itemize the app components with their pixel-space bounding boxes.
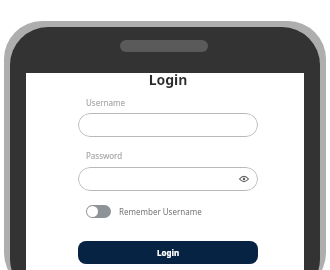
button[interactable] xyxy=(78,113,258,137)
staticText: Username xyxy=(86,97,125,108)
button[interactable]: Login xyxy=(78,241,258,264)
button[interactable]: Show password xyxy=(238,173,250,185)
button[interactable]: Remember Username xyxy=(86,205,202,218)
staticText: Password xyxy=(86,150,123,161)
button[interactable]: Show password xyxy=(78,167,258,191)
staticText: Login xyxy=(157,247,180,258)
staticText: Login xyxy=(78,70,258,89)
staticText: Remember Username xyxy=(119,206,202,217)
